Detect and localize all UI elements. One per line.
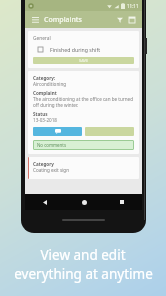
staticText: General <box>33 35 51 42</box>
button[interactable]: Filter <box>114 14 126 26</box>
staticText: Coating exit sign <box>33 167 69 173</box>
staticText: 11:11 <box>127 3 139 9</box>
button[interactable]: SAVE <box>33 57 134 64</box>
staticText: Category: <box>33 75 56 81</box>
button[interactable]: Open navigation menu <box>29 14 41 26</box>
button[interactable]: Calendar <box>126 14 138 26</box>
staticText: View and edit <box>40 246 126 264</box>
button[interactable]: Finished during shift <box>33 46 134 53</box>
button[interactable]: Category <box>28 157 139 179</box>
button[interactable]: Add comment <box>33 127 82 136</box>
button[interactable]: Home <box>78 196 90 208</box>
staticText: No comments <box>37 142 66 148</box>
staticText: Complaint <box>33 90 57 96</box>
staticText: The airconditioning at the office can be… <box>33 96 134 108</box>
staticText: SAVE <box>79 58 89 63</box>
staticText: Category <box>33 161 54 167</box>
staticText: 13-03-2018 <box>33 117 57 123</box>
button[interactable]: Back <box>39 196 51 208</box>
staticText: Airconditioning <box>33 81 67 87</box>
staticText: Finished during shift <box>50 46 101 53</box>
button[interactable]: Recent apps <box>116 196 128 208</box>
button[interactable]: No comments <box>33 140 134 150</box>
staticText: Complaints <box>44 15 82 25</box>
staticText: everything at anytime <box>14 265 153 283</box>
staticText: Status <box>33 111 48 117</box>
